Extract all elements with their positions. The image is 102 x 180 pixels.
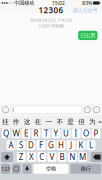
- staticText: 挂: [2, 118, 9, 126]
- staticText: V: [49, 152, 54, 162]
- button[interactable]: O: [81, 128, 90, 138]
- button[interactable]: Y: [51, 128, 60, 138]
- staticText: 15:02: [52, 0, 65, 7]
- button[interactable]: 在: [33, 115, 44, 128]
- staticText: 作: [13, 118, 20, 126]
- staticText: 为: [89, 118, 96, 126]
- staticText: H: [58, 140, 64, 150]
- button[interactable]: Z: [17, 152, 26, 162]
- button[interactable]: B: [58, 152, 67, 162]
- button[interactable]: I: [71, 128, 80, 138]
- staticText: G: [48, 140, 54, 150]
- staticText: 12306: [38, 5, 63, 15]
- staticText: J: [70, 140, 72, 150]
- staticText: T: [44, 128, 48, 139]
- staticText: I: [74, 128, 77, 139]
- staticText: 83%: [82, 0, 93, 7]
- staticText: L: [89, 140, 93, 150]
- button[interactable]: P: [91, 128, 100, 138]
- button[interactable]: More candidates: [98, 115, 102, 128]
- button[interactable]: Q: [1, 128, 10, 138]
- staticText: 在: [35, 118, 42, 126]
- staticText: 123: [1, 165, 10, 172]
- button[interactable]: 一: [44, 115, 54, 128]
- staticText: A: [8, 140, 13, 150]
- button[interactable]: M: [78, 152, 87, 162]
- button[interactable]: Next keyboard: [12, 164, 21, 174]
- button[interactable]: 是: [65, 115, 76, 128]
- staticText: K: [78, 140, 83, 150]
- button[interactable]: 空格: [33, 164, 68, 174]
- staticText: 一: [45, 118, 52, 126]
- staticText: 空格: [46, 165, 56, 172]
- button[interactable]: 挂: [0, 115, 11, 128]
- staticText: Z: [19, 152, 24, 162]
- staticText: P: [93, 128, 98, 139]
- staticText: Q: [3, 128, 9, 139]
- button[interactable]: Emoji: [84, 106, 91, 113]
- button[interactable]: U: [61, 128, 70, 138]
- staticText: 进入公众号: [72, 7, 97, 14]
- button[interactable]: K: [76, 140, 85, 150]
- staticText: 已出票: [80, 32, 95, 39]
- button[interactable]: 为: [87, 115, 98, 128]
- button[interactable]: More: [93, 106, 100, 113]
- staticText: B: [60, 152, 65, 162]
- staticText: C: [39, 152, 44, 162]
- button[interactable]: H: [56, 140, 65, 150]
- button[interactable]: X: [27, 152, 36, 162]
- staticText: S: [19, 140, 23, 150]
- button[interactable]: N: [68, 152, 77, 162]
- staticText: 但: [78, 118, 85, 126]
- button[interactable]: Dictation: [23, 164, 32, 174]
- staticText: E: [24, 128, 28, 139]
- button[interactable]: D: [26, 140, 35, 150]
- button[interactable]: Voice message: [2, 106, 9, 113]
- staticText: Y: [53, 128, 58, 139]
- button[interactable]: W: [11, 128, 20, 138]
- staticText: 不: [56, 118, 63, 126]
- button[interactable]: R: [31, 128, 40, 138]
- button[interactable]: Shift: [1, 152, 13, 162]
- staticText: 换行: [81, 165, 91, 172]
- staticText: 中国移动: [12, 0, 34, 6]
- button[interactable]: L: [86, 140, 95, 150]
- staticText: O: [83, 128, 89, 139]
- staticText: R: [33, 128, 38, 139]
- button[interactable]: V: [47, 152, 56, 162]
- button[interactable]: Delete: [91, 152, 102, 162]
- button[interactable]: 作: [11, 115, 22, 128]
- button[interactable]: 进入公众号: [71, 7, 98, 14]
- staticText: 这: [24, 118, 31, 126]
- staticText: U: [63, 128, 69, 139]
- button[interactable]: G: [46, 140, 55, 150]
- button[interactable]: S: [16, 140, 25, 150]
- button[interactable]: C: [37, 152, 46, 162]
- button[interactable]: E: [21, 128, 30, 138]
- staticText: 是: [67, 118, 74, 126]
- button[interactable]: F: [36, 140, 45, 150]
- staticText: 12306订单提醒: [38, 23, 64, 28]
- staticText: M: [79, 152, 86, 162]
- staticText: W: [12, 128, 19, 139]
- button[interactable]: 但: [76, 115, 87, 128]
- staticText: 2016年5月21日 下午3:02: [30, 17, 72, 23]
- button[interactable]: 这: [22, 115, 33, 128]
- button[interactable]: 123: [1, 164, 10, 174]
- button[interactable]: 换行: [70, 164, 101, 174]
- button[interactable]: A: [6, 140, 15, 150]
- staticText: X: [29, 152, 34, 162]
- staticText: F: [39, 140, 43, 150]
- staticText: D: [28, 140, 34, 150]
- button[interactable]: J: [66, 140, 75, 150]
- staticText: N: [69, 152, 75, 162]
- button[interactable]: T: [41, 128, 50, 138]
- button[interactable]: 不: [54, 115, 65, 128]
